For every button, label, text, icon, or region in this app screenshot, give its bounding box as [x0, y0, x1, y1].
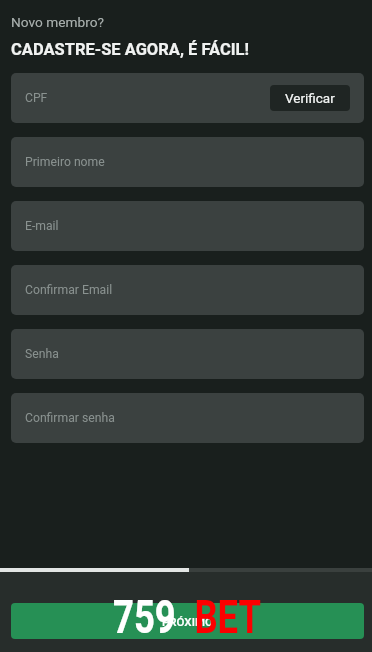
button[interactable]: Confirmar senha	[11, 393, 364, 443]
staticText: Senha	[25, 347, 59, 361]
staticText: Novo membro?	[11, 14, 104, 30]
staticText: BET	[194, 589, 261, 644]
button[interactable]: E-mail	[11, 201, 364, 251]
staticText: CPF	[25, 91, 48, 105]
staticText: Confirmar senha	[25, 411, 115, 425]
button[interactable]: Confirmar Email	[11, 265, 364, 315]
staticText: CADASTRE-SE AGORA, É FÁCIL!	[11, 40, 249, 59]
button[interactable]: PRÓXIMO	[11, 603, 364, 639]
button[interactable]: CPF	[11, 73, 364, 123]
staticText: Primeiro nome	[25, 155, 105, 169]
button[interactable]: Primeiro nome	[11, 137, 364, 187]
button[interactable]: Verificar	[270, 85, 350, 111]
staticText: Verificar	[285, 90, 335, 106]
staticText: 759	[113, 589, 176, 644]
other: 759BET	[113, 589, 261, 644]
staticText: PRÓXIMO	[162, 615, 213, 628]
button[interactable]: Senha	[11, 329, 364, 379]
staticText: Confirmar Email	[25, 283, 113, 297]
staticText: E-mail	[25, 219, 59, 233]
